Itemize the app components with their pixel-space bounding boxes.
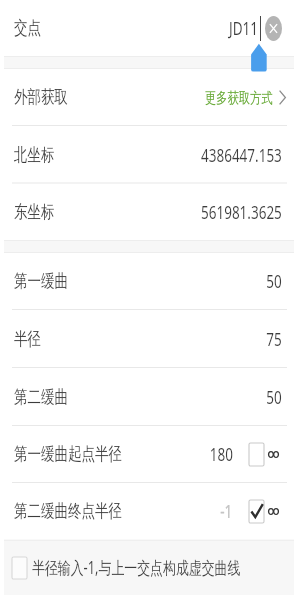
button[interactable]: 外部获取	[0, 69, 298, 126]
staticText: 东坐标	[14, 201, 54, 224]
button[interactable]: 第一缓曲起点半径	[0, 426, 298, 483]
staticText: 第二缓曲终点半径	[14, 500, 122, 523]
staticText: 更多获取方式	[205, 88, 273, 107]
button[interactable]: Clear text	[265, 16, 282, 41]
button[interactable]: 半径	[0, 310, 298, 368]
staticText: 第一缓曲	[14, 270, 68, 293]
button[interactable]: 半径输入-1,与上一交点构成虚交曲线	[0, 540, 298, 595]
staticText: 50	[266, 269, 282, 294]
staticText: 4386447.153	[201, 143, 282, 168]
staticText: 交点	[14, 17, 41, 40]
button[interactable]: 第二缓曲终点半径	[0, 483, 298, 540]
staticText: 第一缓曲起点半径	[14, 443, 122, 466]
staticText: 半径	[14, 328, 41, 351]
staticText: 561981.3625	[201, 200, 282, 225]
staticText: 180	[210, 442, 233, 467]
button[interactable]: 东坐标	[0, 184, 298, 241]
button[interactable]: 第一缓曲	[0, 253, 298, 310]
staticText: 50	[266, 385, 282, 410]
staticText: -1	[220, 499, 233, 524]
staticText: 75	[266, 327, 282, 352]
staticText: 半径输入-1,与上一交点构成虚交曲线	[32, 556, 240, 579]
button[interactable]: 交点	[0, 0, 298, 56]
staticText: 第二缓曲	[14, 386, 68, 409]
button[interactable]: 北坐标	[0, 126, 298, 184]
staticText: 外部获取	[14, 86, 68, 109]
button[interactable]: 第二缓曲	[0, 368, 298, 426]
staticText: JD11	[229, 16, 258, 41]
staticText: 北坐标	[14, 144, 54, 167]
